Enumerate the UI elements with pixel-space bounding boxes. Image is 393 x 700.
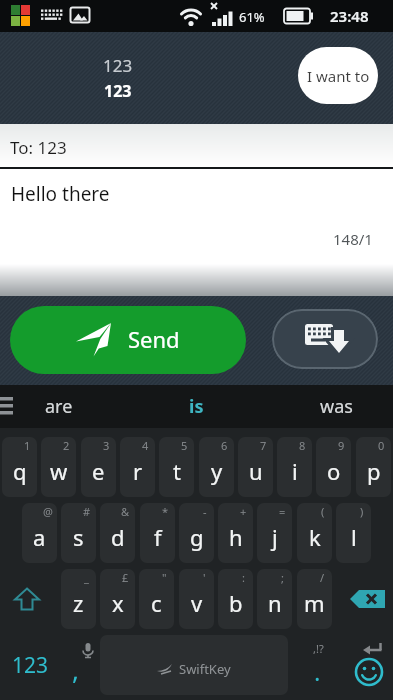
staticText: t [173,456,181,486]
button[interactable]: 7 [238,437,273,497]
staticText: was [320,394,353,419]
staticText: : [242,570,245,585]
button[interactable]: 8 [277,437,312,497]
staticText: i [292,456,298,486]
button[interactable]: & [100,503,135,563]
button[interactable]: ) [336,503,371,563]
staticText: Send [128,324,180,354]
staticText: 4 [142,438,149,453]
button[interactable] [330,635,391,695]
button[interactable]: - [179,503,214,563]
staticText: g [190,522,204,552]
button[interactable]: * [140,503,175,563]
staticText: * [162,504,169,519]
staticText: k [309,522,321,552]
staticText: 123 [103,54,133,77]
staticText: = [279,504,286,519]
button[interactable]: 123 [2,635,58,695]
staticText: r [133,456,143,486]
staticText: j [272,522,278,552]
staticText: 9 [338,438,345,453]
staticText: ) [360,504,364,519]
button[interactable]: ; [257,569,292,629]
staticText: + [240,504,247,519]
button[interactable]: 3 [81,437,116,497]
staticText: are [45,394,73,419]
button[interactable]: ' [179,569,214,629]
staticText: l [351,522,357,552]
button[interactable]: @ [22,503,57,563]
staticText: o [327,456,341,486]
staticText: . [314,655,321,688]
button[interactable]: 2 [41,437,76,497]
button[interactable]: was [291,385,381,428]
staticText: 0 [378,438,385,453]
button[interactable]: Hello there [0,169,393,296]
staticText: , [72,652,79,687]
staticText: v [191,588,203,618]
staticText: h [229,522,243,552]
button[interactable]: , [60,635,98,695]
button[interactable]: 0 [356,437,391,497]
staticText: 123 [104,80,132,102]
button[interactable] [336,569,391,629]
button[interactable]: " [139,569,174,629]
staticText: / [320,570,325,585]
staticText: & [121,504,130,519]
staticText: 123 [12,651,49,680]
button[interactable]: 4 [120,437,155,497]
button[interactable]: are [14,385,104,428]
button[interactable]: / [297,569,332,629]
staticText: To: 123 [10,136,67,159]
staticText: f [154,522,162,552]
button[interactable]: £ [100,569,135,629]
button[interactable]: 5 [159,437,194,497]
staticText: y [211,456,223,486]
staticText: ' [203,570,206,585]
button[interactable]: + [218,503,253,563]
staticText: u [249,456,263,486]
button[interactable]: 1 [2,437,37,497]
button[interactable]: = [257,503,292,563]
button[interactable]: SwiftKey [100,635,288,695]
staticText: e [92,456,105,486]
button[interactable]: : [218,569,253,629]
staticText: 8 [299,438,306,453]
staticText: 6 [221,438,228,453]
staticText: x [112,588,124,618]
button[interactable]: 9 [316,437,351,497]
staticText: - [203,504,207,519]
button[interactable]: To: 123 [0,124,393,167]
staticText: @ [43,504,53,519]
button[interactable]: # [61,503,96,563]
staticText: 61% [239,8,265,26]
staticText: is [189,394,204,419]
staticText: s [73,522,84,552]
staticText: ; [281,570,284,585]
staticText: q [13,456,27,486]
button[interactable] [272,309,378,369]
button[interactable]: 6 [199,437,234,497]
button[interactable]: ( [297,503,332,563]
staticText: a [33,522,46,552]
staticText: ,!? [313,641,324,656]
staticText: _ [84,570,89,585]
staticText: w [50,456,68,486]
staticText: 3 [103,438,110,453]
staticText: d [111,522,125,552]
staticText: z [73,588,84,618]
button[interactable]: is [151,385,241,428]
staticText: p [367,456,381,486]
button[interactable]: _ [61,569,96,629]
staticText: I want to [307,66,370,86]
staticText: 148/1 [333,229,373,249]
button[interactable] [2,569,58,629]
staticText: £ [122,570,129,585]
button[interactable]: Send [10,306,246,374]
staticText: m [304,588,325,618]
staticText: # [83,504,91,519]
button[interactable]: ,!? [290,635,328,695]
staticText: Hello there [11,181,110,207]
staticText: SwiftKey [179,660,231,678]
button[interactable]: I want to [298,47,378,104]
